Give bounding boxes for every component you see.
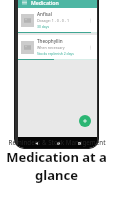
button[interactable]: Back [32,139,40,147]
staticText: Theophyllin [37,38,63,44]
staticText: Dosage: 1 - 0 - 0 - 1 [37,18,69,23]
button[interactable]: More options [86,16,94,24]
button[interactable]: Home [54,139,62,147]
staticText: Reminders & Stock Management [8,138,106,146]
staticText: Stocks replenish 2 days [37,51,74,56]
button[interactable]: Add medication [79,115,91,127]
staticText: 30 days [37,24,50,29]
staticText: Medication [31,0,59,6]
staticText: Medication at a glance [0,148,113,184]
button[interactable]: Recents [75,139,83,147]
button[interactable]: More options [86,43,94,51]
button[interactable]: Anfisal [18,8,97,33]
staticText: When necessary [37,45,65,50]
staticText: Anfisal [37,11,52,17]
button[interactable]: Theophyllin [18,35,97,60]
button[interactable]: Open navigation menu [21,0,28,6]
